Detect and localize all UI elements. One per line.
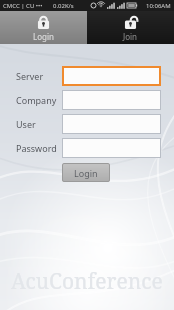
staticText: Login <box>74 167 98 179</box>
staticText: 10:06AM <box>146 2 171 10</box>
button[interactable]: Login <box>0 11 87 44</box>
staticText: Login <box>33 31 54 42</box>
button[interactable]: Login <box>62 163 110 182</box>
button[interactable] <box>62 138 161 158</box>
staticText: CMCC | CU ••• <box>3 2 43 10</box>
staticText: Join <box>123 31 138 42</box>
button[interactable]: Join <box>87 11 174 44</box>
staticText: 0.02K/s <box>53 2 74 10</box>
staticText: Company <box>16 94 57 106</box>
button[interactable] <box>62 66 161 86</box>
button[interactable] <box>62 90 161 110</box>
staticText: Password <box>16 142 57 154</box>
staticText: User <box>16 118 36 130</box>
staticText: AcuConference <box>11 267 163 296</box>
button[interactable] <box>62 114 161 134</box>
staticText: Server <box>16 70 44 82</box>
